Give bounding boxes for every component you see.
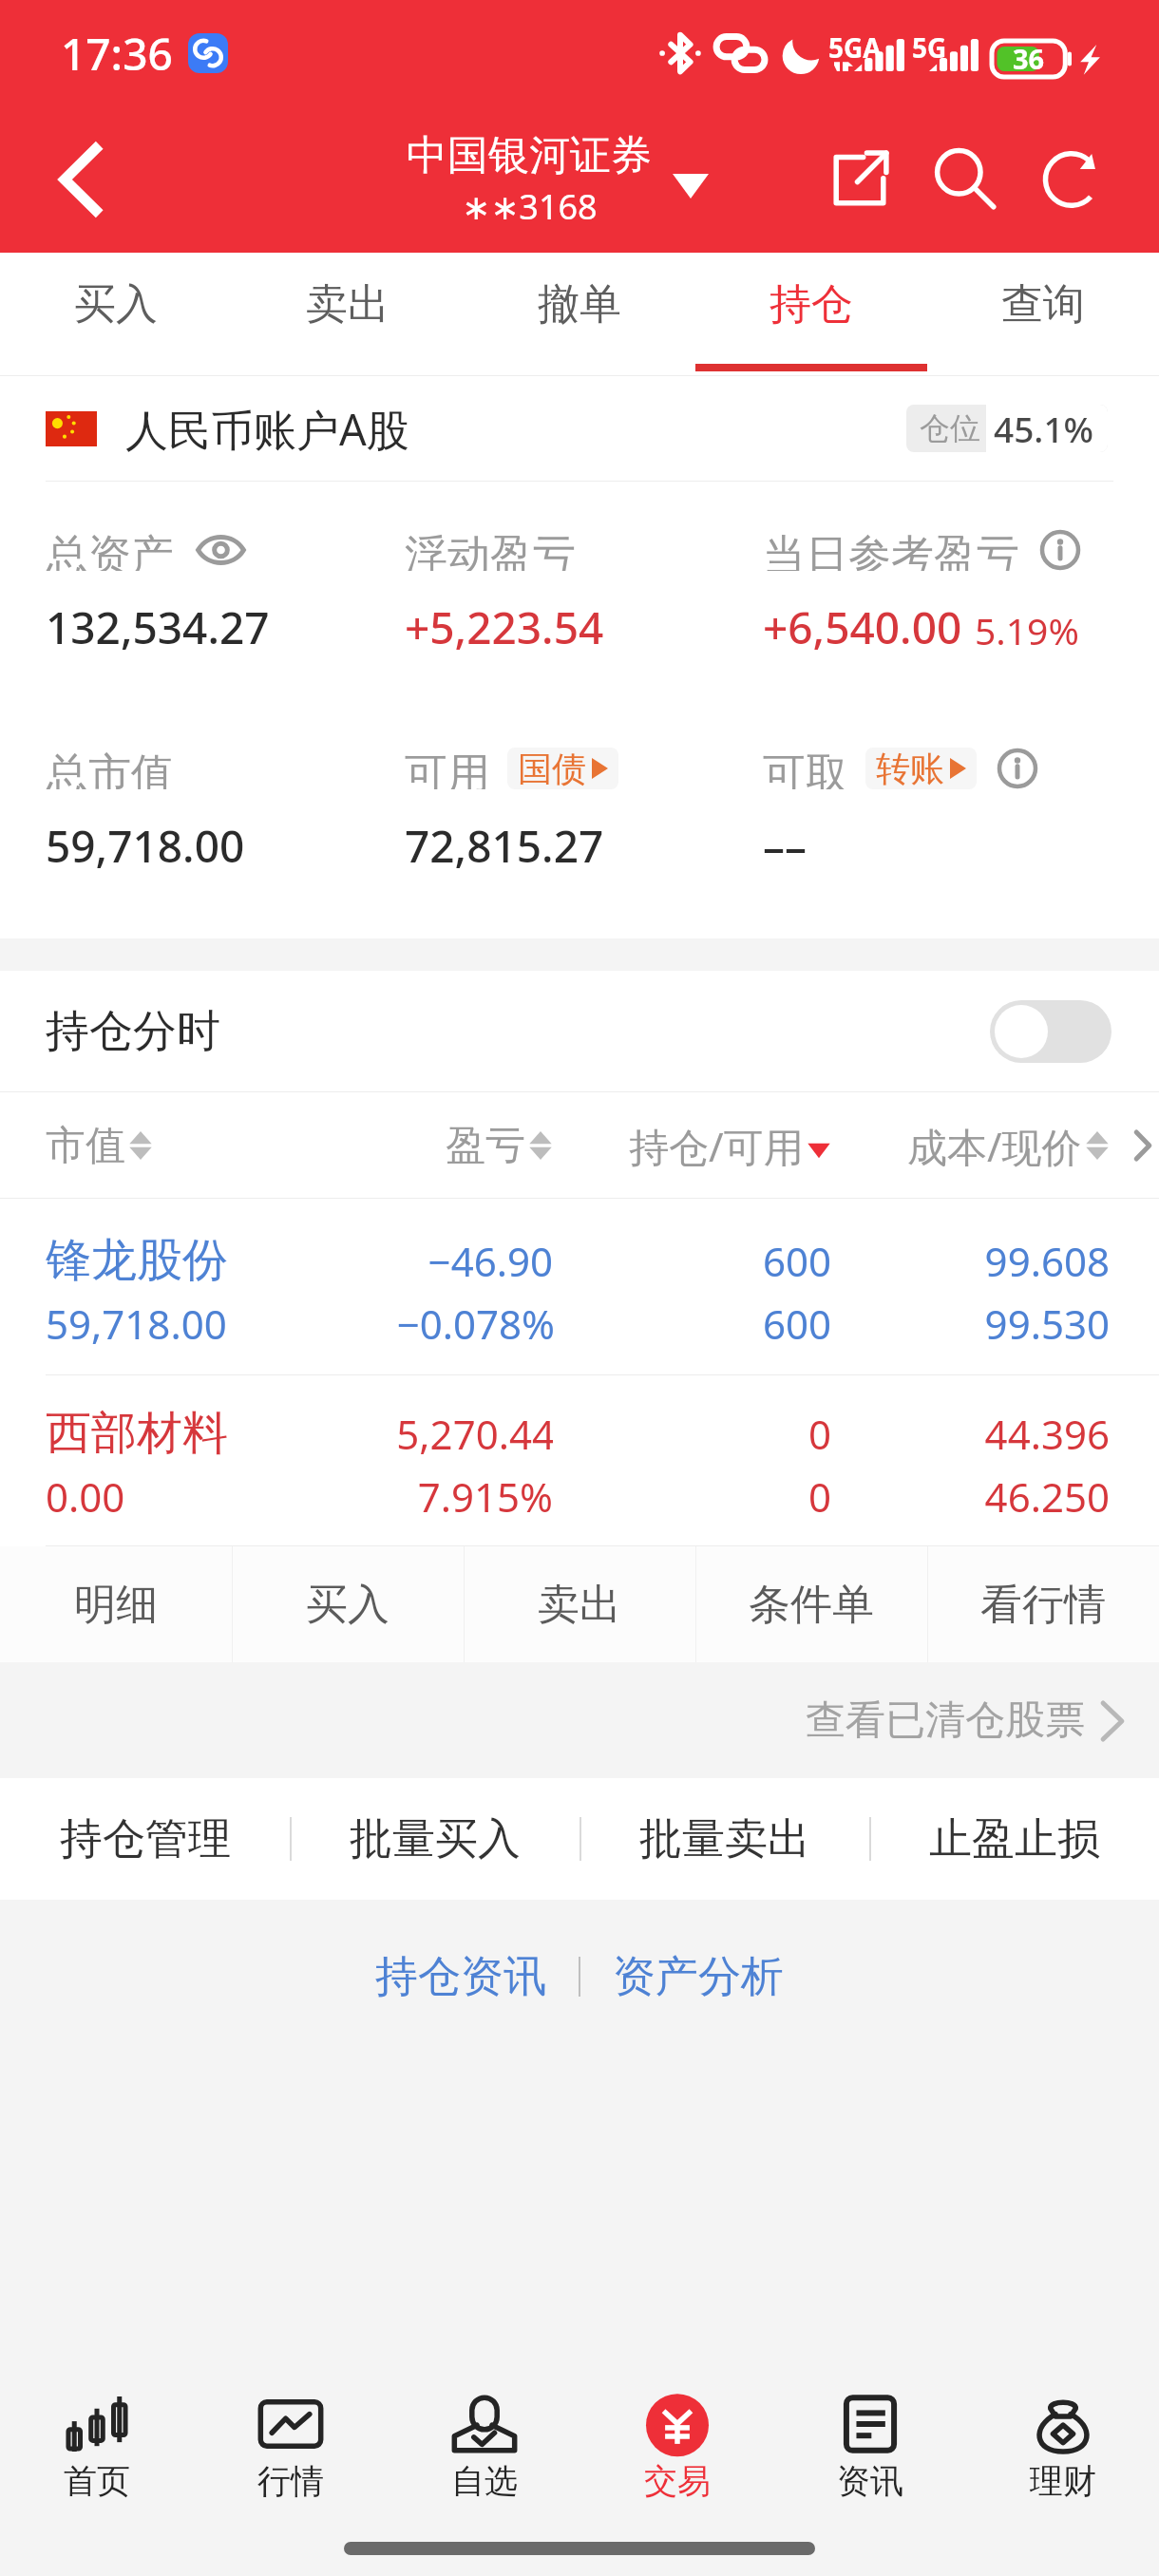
staticText: 市值 [46,1121,125,1171]
staticText: 72,815.27 [405,816,604,876]
button[interactable]: 查看已清仓股票 [0,1662,1159,1778]
staticText: 买入 [306,1579,389,1631]
button[interactable]: 自选 [388,2318,580,2511]
button[interactable]: 止盈止损 [869,1778,1159,1900]
staticText: 资产分析 [613,1950,784,2004]
staticText: −0.078% [396,1297,553,1351]
staticText: 交易 [644,2460,711,2502]
button[interactable]: 条件单 [695,1546,927,1662]
staticText: 持仓分时 [46,1004,220,1059]
staticText: 5G [912,29,947,66]
button[interactable]: 持仓资讯 [360,1939,561,2016]
button[interactable]: 理财 [966,2318,1159,2511]
button[interactable]: Info [996,748,1039,789]
staticText: 45.1% [994,405,1094,452]
button[interactable]: 资讯 [773,2318,966,2511]
button[interactable]: 查询 [927,253,1159,376]
button[interactable]: 明细 [0,1546,232,1662]
button[interactable]: Search [913,126,1019,233]
staticText: 99.530 [831,1297,1110,1351]
button[interactable]: 买入 [0,253,232,376]
staticText: 资讯 [837,2460,903,2502]
button[interactable]: 转账 [865,748,977,789]
button[interactable]: 首页 [0,2318,194,2511]
button[interactable]: 撤单 [464,253,695,376]
staticText: 理财 [1030,2460,1096,2502]
button[interactable]: Toggle intraday chart [990,1000,1111,1063]
staticText: 批量卖出 [639,1812,810,1866]
staticText: 明细 [74,1579,158,1631]
staticText: 中国银河证券 [407,130,652,181]
staticText: −46.90 [396,1234,553,1288]
staticText: 17:36 [61,24,173,84]
staticText: 0 [553,1407,831,1461]
button[interactable]: 中国银河证券 [403,126,712,234]
staticText: –– [763,816,807,876]
button[interactable]: 锋龙股份 [0,1199,1159,1374]
button[interactable]: 看行情 [927,1546,1159,1662]
staticText: +5,223.54 [405,597,604,657]
staticText: 可取 [763,748,848,789]
staticText: 卖出 [306,278,389,331]
button[interactable]: 盈亏 [396,1092,553,1199]
staticText: 国债 [518,748,586,789]
staticText: 首页 [64,2460,130,2502]
staticText: 仓位 [920,409,980,447]
staticText: 持仓/可用 [629,1119,804,1173]
button[interactable]: 持仓/可用 [553,1092,831,1199]
staticText: 看行情 [980,1579,1106,1631]
staticText: 锋龙股份 [46,1232,396,1289]
staticText: 行情 [257,2460,324,2502]
staticText: 59,718.00 [46,1297,396,1351]
button[interactable]: 人民币账户A股 [46,400,409,458]
button[interactable]: 资产分析 [598,1939,799,2016]
button[interactable]: 市值 [46,1092,396,1199]
staticText: 人民币账户A股 [125,400,409,458]
staticText: 600 [553,1234,831,1288]
button[interactable]: 持仓 [695,253,927,376]
staticText: 46.250 [831,1469,1110,1524]
staticText: 99.608 [831,1234,1110,1288]
button[interactable]: 仓位 [906,405,1108,452]
staticText: 持仓资讯 [375,1950,546,2004]
staticText: 成本/现价 [907,1119,1082,1173]
button[interactable]: 批量卖出 [579,1778,869,1900]
staticText: ∗∗3168 [462,183,598,230]
staticText: 44.396 [831,1407,1110,1461]
button[interactable]: 卖出 [232,253,464,376]
button[interactable]: 国债 [507,748,618,789]
button[interactable]: 行情 [194,2318,388,2511]
button[interactable]: Back [32,132,127,227]
staticText: 查看已清仓股票 [806,1695,1085,1746]
staticText: 买入 [74,278,158,331]
staticText: 西部材料 [46,1405,396,1462]
button[interactable]: 成本/现价 [831,1092,1110,1199]
button[interactable]: Refresh [1019,126,1126,233]
button[interactable]: Toggle visibility [197,533,245,567]
staticText: 总资产 [46,529,174,571]
staticText: 36 [1013,40,1045,77]
button[interactable]: Info [1038,529,1082,571]
staticText: 批量买入 [350,1812,521,1866]
staticText: 转账 [876,748,944,789]
staticText: 止盈止损 [929,1812,1100,1866]
staticText: 可用 [405,748,490,789]
staticText: 盈亏 [446,1121,525,1171]
button[interactable]: 交易 [580,2318,773,2511]
button[interactable]: 买入 [232,1546,464,1662]
staticText: 自选 [451,2460,518,2502]
button[interactable]: Share [807,126,913,233]
staticText: 持仓 [769,278,853,331]
button[interactable]: 批量买入 [290,1778,579,1900]
staticText: +6,540.00 [763,597,962,657]
staticText: 7.915% [396,1469,553,1524]
staticText: 撤单 [538,278,621,331]
staticText: 5.19% [975,605,1079,655]
staticText: 持仓管理 [60,1812,231,1866]
staticText: 当日参考盈亏 [763,529,1019,571]
button[interactable]: 持仓管理 [0,1778,290,1900]
button[interactable]: 西部材料 [0,1375,1159,1545]
button[interactable]: 卖出 [464,1546,695,1662]
staticText: 5GA [828,29,882,66]
staticText: 条件单 [749,1579,874,1631]
